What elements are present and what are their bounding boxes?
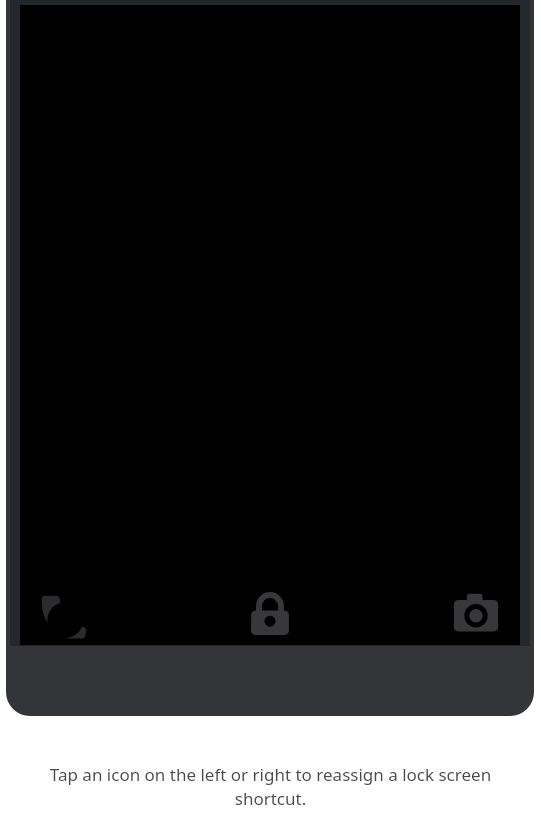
staticText: Tap an icon on the left or right to reas… (14, 763, 527, 810)
button[interactable]: Phone shortcut (33, 586, 93, 646)
button[interactable]: Lock (240, 584, 300, 644)
button[interactable]: Camera shortcut (446, 583, 506, 643)
